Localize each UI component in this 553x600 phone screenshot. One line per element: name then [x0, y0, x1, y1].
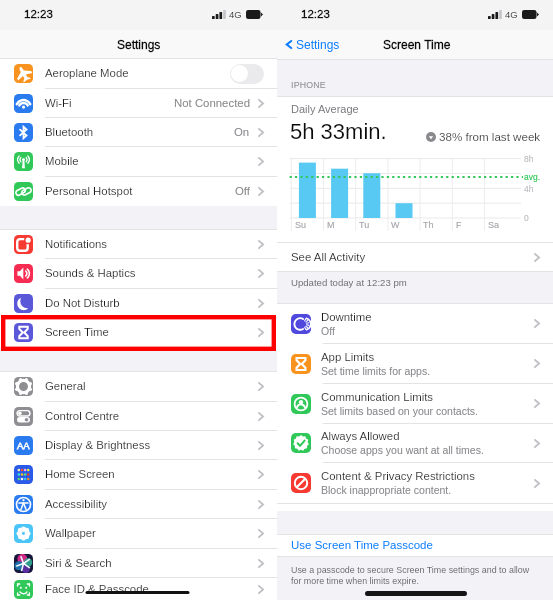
staticText: Use Screen Time Passcode [291, 539, 433, 552]
button[interactable]: General [0, 372, 277, 402]
staticText: Always Allowed [321, 430, 400, 443]
staticText: AA [17, 440, 30, 451]
staticText: Sa [488, 220, 500, 230]
staticText: General [45, 380, 86, 393]
button[interactable]: Face ID & Passcode [0, 578, 277, 600]
button[interactable]: Always Allowed [277, 424, 553, 463]
staticText: Siri & Search [45, 557, 112, 570]
staticText: Notifications [45, 238, 108, 251]
button[interactable]: See All Activity [291, 243, 540, 271]
staticText: App Limits [321, 351, 375, 364]
button[interactable]: App Limits [277, 344, 553, 384]
staticText: Set limits based on your contacts. [321, 405, 478, 417]
button[interactable]: Communication Limits [277, 384, 553, 424]
staticText: Accessibility [45, 498, 108, 511]
staticText: Updated today at 12:23 pm [291, 277, 407, 288]
staticText: Downtime [321, 311, 372, 324]
staticText: Wallpaper [45, 527, 96, 540]
button[interactable]: Sounds & Haptics [0, 259, 277, 289]
button[interactable]: Use Screen Time Passcode [277, 535, 553, 556]
staticText: Communication Limits [321, 391, 434, 404]
staticText: Set time limits for apps. [321, 365, 431, 377]
button[interactable]: AA [0, 431, 277, 460]
staticText: Off [321, 325, 335, 337]
staticText: F [456, 220, 462, 230]
staticText: for more time when limits expire. [291, 576, 419, 586]
button[interactable]: Notifications [0, 230, 277, 259]
staticText: Daily Average [291, 103, 359, 115]
staticText: 12:23 [301, 8, 330, 21]
button[interactable]: Personal Hotspot [0, 177, 277, 206]
staticText: On [234, 126, 250, 139]
staticText: Home Screen [45, 468, 115, 481]
staticText: Display & Brightness [45, 439, 151, 452]
staticText: 8h [524, 154, 534, 163]
staticText: 4G [505, 9, 518, 20]
button[interactable]: Content & Privacy Restrictions [277, 463, 553, 503]
staticText: Use a passcode to secure Screen Time set… [291, 565, 530, 575]
staticText: Bluetooth [45, 126, 94, 139]
staticText: Control Centre [45, 410, 120, 423]
button[interactable]: Downtime [277, 304, 553, 344]
staticText: 12:23 [24, 8, 53, 21]
staticText: Content & Privacy Restrictions [321, 470, 475, 483]
staticText: Personal Hotspot [45, 185, 133, 198]
staticText: Screen Time [383, 38, 451, 51]
staticText: Tu [359, 220, 370, 230]
staticText: Wi-Fi [45, 97, 72, 110]
staticText: 38% from last week [439, 130, 541, 143]
staticText: 5h 33min. [290, 119, 387, 144]
staticText: Su [295, 220, 307, 230]
staticText: See All Activity [291, 251, 366, 264]
staticText: IPHONE [291, 80, 326, 90]
button[interactable]: Wallpaper [0, 519, 277, 549]
button[interactable]: Control Centre [0, 402, 277, 431]
staticText: Th [423, 220, 434, 230]
staticText: 0 [524, 213, 529, 222]
staticText: Aeroplane Mode [45, 67, 129, 80]
staticText: 4h [524, 184, 534, 193]
staticText: Choose apps you want at all times. [321, 444, 484, 456]
staticText: Do Not Disturb [45, 297, 120, 310]
staticText: Not Connected [174, 97, 250, 110]
button[interactable]: Home Screen [0, 460, 277, 490]
button[interactable]: Back to Settings [285, 38, 340, 51]
staticText: Face ID & Passcode [45, 583, 149, 596]
staticText: Sounds & Haptics [45, 267, 136, 280]
button[interactable]: Siri & Search [0, 549, 277, 578]
staticText: Screen Time [45, 326, 109, 339]
staticText: Settings [117, 38, 161, 51]
button[interactable]: Aeroplane Mode [0, 59, 277, 89]
button[interactable]: Screen Time [0, 318, 277, 347]
staticText: Block inappropriate content. [321, 484, 452, 496]
staticText: avg. [524, 172, 541, 181]
button[interactable]: Wi-Fi [0, 89, 277, 118]
staticText: W [391, 220, 400, 230]
staticText: M [327, 220, 335, 230]
button[interactable]: Accessibility [0, 490, 277, 519]
button[interactable]: Mobile [0, 147, 277, 177]
staticText: Mobile [45, 155, 79, 168]
staticText: Settings [296, 38, 340, 51]
staticText: 4G [229, 9, 242, 20]
button[interactable]: Do Not Disturb [0, 289, 277, 318]
button[interactable]: Bluetooth [0, 118, 277, 147]
staticText: Off [235, 185, 250, 198]
